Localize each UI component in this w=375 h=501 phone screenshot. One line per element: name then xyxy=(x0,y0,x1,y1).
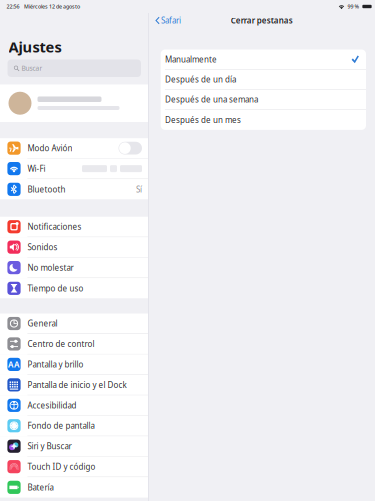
staticText: Centro de control xyxy=(27,339,94,349)
staticText: Después de una semana xyxy=(165,94,258,105)
button[interactable]: Pantalla de inicio y el Dock xyxy=(0,375,148,395)
staticText: Manualmente xyxy=(165,54,217,65)
staticText: Bluetooth xyxy=(27,184,65,195)
staticText: AA xyxy=(8,359,20,370)
staticText: Notificaciones xyxy=(27,221,81,232)
staticText: Buscar xyxy=(21,64,42,73)
button[interactable]: Tiempo de uso xyxy=(0,278,148,298)
staticText: 99 % xyxy=(347,3,359,10)
button[interactable] xyxy=(0,84,148,122)
button[interactable]: Accesibilidad xyxy=(0,395,148,416)
button[interactable]: Bluetooth xyxy=(0,179,148,199)
button[interactable]: AA xyxy=(0,354,148,375)
staticText: No molestar xyxy=(27,262,73,273)
button[interactable]: Después de una semana xyxy=(161,90,366,110)
button[interactable]: Touch ID y código xyxy=(0,457,148,477)
staticText: Pantalla y brillo xyxy=(27,359,83,370)
staticText: Pantalla de inicio y el Dock xyxy=(27,379,126,390)
staticText: Tiempo de uso xyxy=(27,283,83,294)
button[interactable]: General xyxy=(0,313,148,334)
staticText: Sí xyxy=(136,184,142,195)
staticText: Fondo de pantalla xyxy=(27,420,94,431)
staticText: Touch ID y código xyxy=(27,461,95,472)
staticText: Safari xyxy=(161,15,181,26)
button[interactable]: Fondo de pantalla xyxy=(0,416,148,436)
staticText: Después de un día xyxy=(165,74,236,85)
button[interactable]: Sonidos xyxy=(0,237,148,258)
staticText: Cerrar pestañas xyxy=(231,15,293,26)
button[interactable]: Manualmente xyxy=(161,49,366,70)
button[interactable]: Wi-Fi xyxy=(0,159,148,179)
button[interactable]: Safari xyxy=(149,13,185,27)
button[interactable]: Notificaciones xyxy=(0,217,148,237)
button[interactable]: No molestar xyxy=(0,258,148,278)
staticText: General xyxy=(27,318,57,329)
button[interactable]: Siri y Buscar xyxy=(0,436,148,457)
button[interactable]: Después de un día xyxy=(161,70,366,90)
staticText: Modo Avión xyxy=(27,143,72,153)
staticText: Sonidos xyxy=(27,242,57,252)
button[interactable]: Buscar xyxy=(0,59,148,77)
staticText: Accesibilidad xyxy=(27,400,76,411)
staticText: Batería xyxy=(27,482,53,493)
button[interactable]: Modo Avión xyxy=(0,138,148,159)
button[interactable]: Centro de control xyxy=(0,334,148,354)
staticText: Ajustes xyxy=(8,37,61,56)
staticText: Miércoles 12 de agosto xyxy=(24,3,80,10)
staticText: Después de un mes xyxy=(165,114,241,125)
staticText: Wi-Fi xyxy=(27,163,45,174)
button[interactable]: Batería xyxy=(0,477,148,497)
staticText: 22:56 xyxy=(6,3,19,10)
staticText: Siri y Buscar xyxy=(27,441,71,451)
button[interactable]: Después de un mes xyxy=(161,110,366,130)
